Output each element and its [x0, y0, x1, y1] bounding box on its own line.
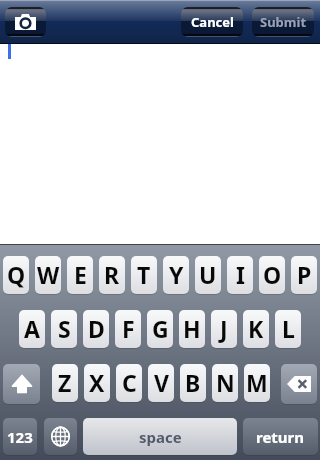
staticText: V — [154, 367, 169, 398]
button[interactable]: Z — [52, 364, 78, 402]
button[interactable]: M — [244, 364, 270, 402]
staticText: W — [37, 259, 60, 290]
staticText: T — [137, 259, 151, 290]
button[interactable]: K — [243, 310, 269, 348]
staticText: D — [88, 313, 105, 344]
staticText: 123 — [7, 427, 33, 447]
staticText: K — [248, 313, 264, 344]
staticText: C — [122, 367, 137, 398]
button[interactable]: 123 — [3, 418, 37, 455]
staticText: E — [74, 259, 87, 290]
button[interactable]: H — [179, 310, 205, 348]
button[interactable]: Q — [3, 256, 29, 294]
staticText: L — [282, 313, 295, 344]
button[interactable]: P — [291, 256, 317, 294]
button[interactable]: Take photo — [5, 7, 46, 37]
staticText: Z — [58, 367, 72, 398]
button[interactable]: F — [115, 310, 141, 348]
button[interactable]: Change keyboard — [44, 418, 77, 455]
button[interactable]: Backspace — [281, 364, 317, 404]
button[interactable]: E — [67, 256, 93, 294]
staticText: R — [104, 259, 120, 290]
button[interactable]: O — [259, 256, 285, 294]
staticText: P — [297, 259, 312, 290]
button[interactable]: G — [147, 310, 173, 348]
button[interactable]: return — [243, 418, 318, 455]
staticText: return — [256, 427, 305, 447]
staticText: U — [199, 259, 217, 290]
button[interactable]: space — [83, 418, 237, 455]
button[interactable]: I — [227, 256, 253, 294]
staticText: S — [58, 313, 71, 344]
button[interactable]: V — [148, 364, 174, 402]
staticText: X — [89, 367, 105, 398]
staticText: F — [122, 313, 135, 344]
staticText: Q — [7, 259, 26, 290]
button[interactable]: C — [116, 364, 142, 402]
staticText: G — [152, 313, 169, 344]
button[interactable]: Submit — [252, 7, 314, 37]
staticText: J — [220, 313, 228, 344]
staticText: M — [246, 367, 268, 398]
staticText: Y — [169, 259, 184, 290]
button[interactable]: S — [51, 310, 77, 348]
staticText: N — [216, 367, 235, 398]
staticText: H — [183, 313, 201, 344]
staticText: space — [139, 427, 182, 447]
staticText: O — [263, 259, 282, 290]
button[interactable]: W — [35, 256, 61, 294]
button[interactable]: U — [195, 256, 221, 294]
button[interactable]: X — [84, 364, 110, 402]
button[interactable]: J — [211, 310, 237, 348]
button[interactable]: Shift — [3, 364, 40, 404]
staticText: I — [236, 259, 245, 290]
button[interactable]: B — [180, 364, 206, 402]
staticText: A — [24, 313, 40, 344]
button[interactable]: Y — [163, 256, 189, 294]
staticText: B — [185, 367, 201, 398]
button[interactable]: Cancel — [181, 7, 243, 37]
button[interactable]: L — [275, 310, 301, 348]
button[interactable]: D — [83, 310, 109, 348]
button[interactable]: T — [131, 256, 157, 294]
button[interactable]: N — [212, 364, 238, 402]
staticText: Cancel — [191, 13, 234, 31]
button[interactable]: R — [99, 256, 125, 294]
staticText: Submit — [260, 13, 307, 31]
button[interactable]: A — [19, 310, 45, 348]
